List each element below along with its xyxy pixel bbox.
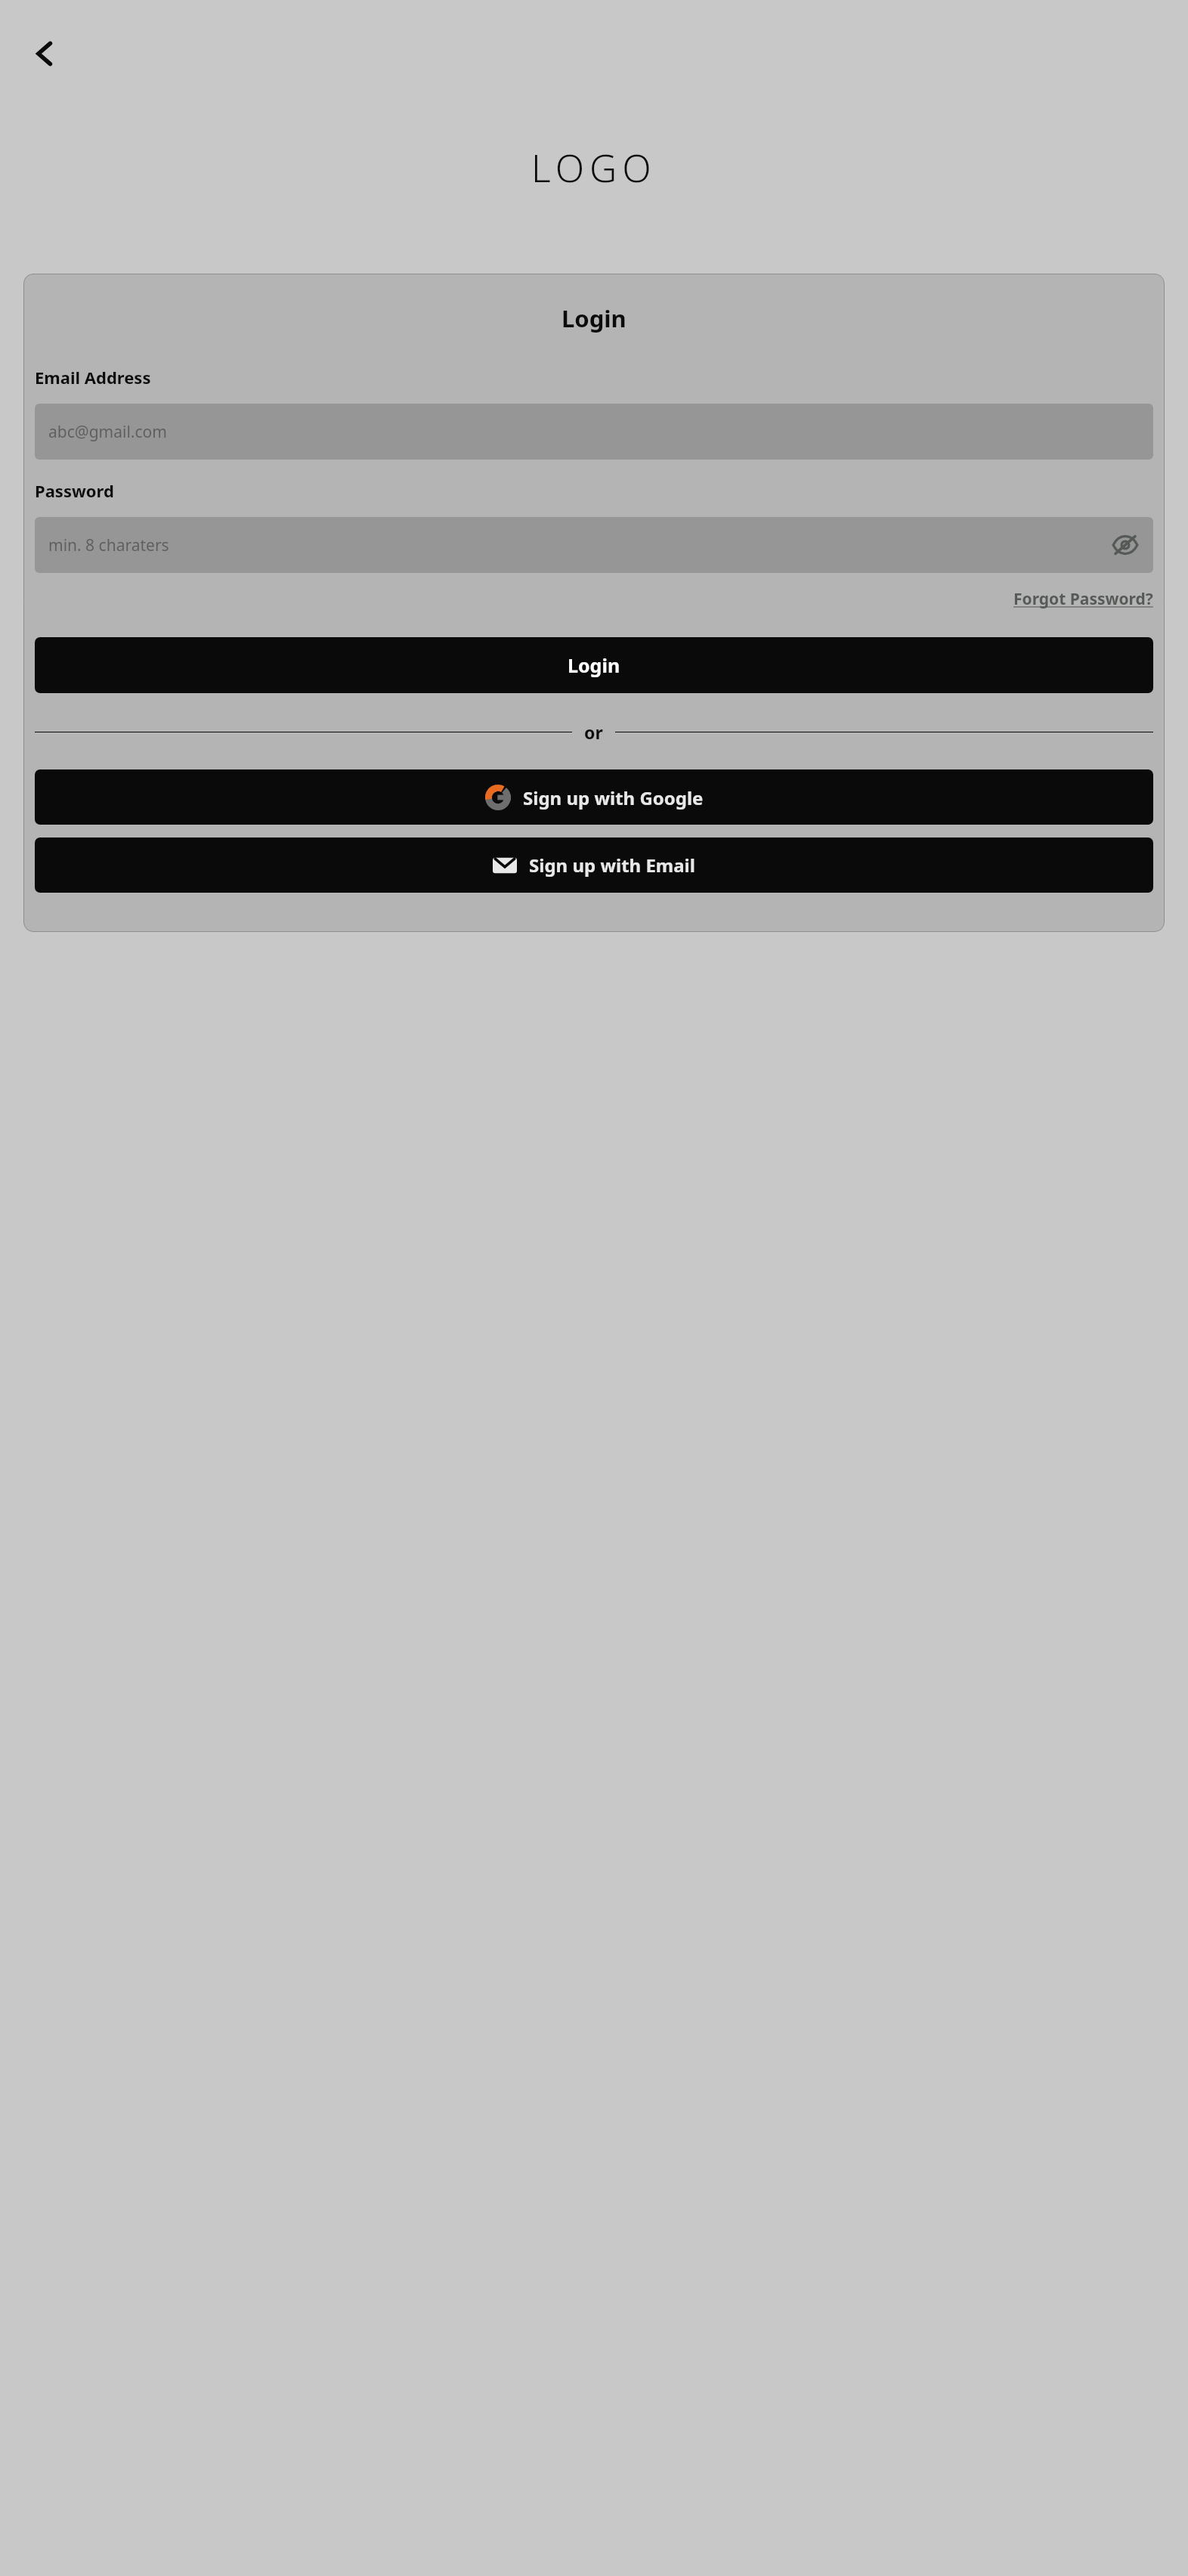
- staticText: Forgot Password?: [1013, 588, 1153, 610]
- button[interactable]: Forgot Password?: [1013, 584, 1153, 615]
- button[interactable]: Login: [35, 637, 1153, 693]
- button[interactable]: Show password: [1108, 528, 1143, 562]
- staticText: or: [584, 720, 603, 744]
- staticText: Sign up with Google: [523, 785, 704, 810]
- staticText: Email Address: [35, 366, 151, 389]
- staticText: Sign up with Email: [529, 853, 695, 878]
- button[interactable]: Sign up with Google: [35, 769, 1153, 825]
- staticText: min. 8 charaters: [48, 534, 169, 556]
- button[interactable]: Sign up with Email: [35, 838, 1153, 893]
- button[interactable]: abc@gmail.com: [35, 404, 1153, 460]
- staticText: abc@gmail.com: [48, 421, 167, 443]
- staticText: LOGO: [531, 142, 657, 194]
- button[interactable]: min. 8 charaters: [35, 517, 1153, 573]
- staticText: Login: [568, 652, 620, 678]
- staticText: Login: [562, 302, 626, 334]
- button[interactable]: Back: [21, 30, 68, 77]
- staticText: Password: [35, 479, 114, 502]
